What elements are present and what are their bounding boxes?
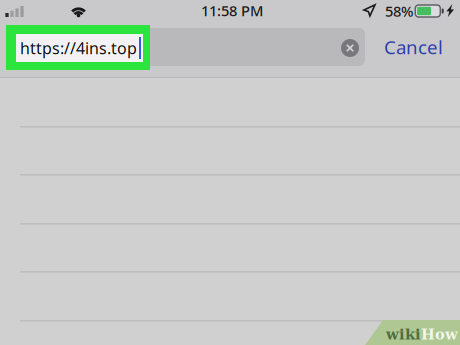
staticText: How xyxy=(421,326,458,343)
staticText: 58% xyxy=(385,1,413,21)
staticText: Cancel xyxy=(384,35,443,59)
staticText: 11:58 PM xyxy=(201,1,263,20)
button[interactable]: Cancel xyxy=(384,33,446,61)
staticText: https://4ins.top xyxy=(20,37,137,59)
staticText: wiki xyxy=(386,326,421,343)
button[interactable]: Clear text xyxy=(341,39,359,57)
